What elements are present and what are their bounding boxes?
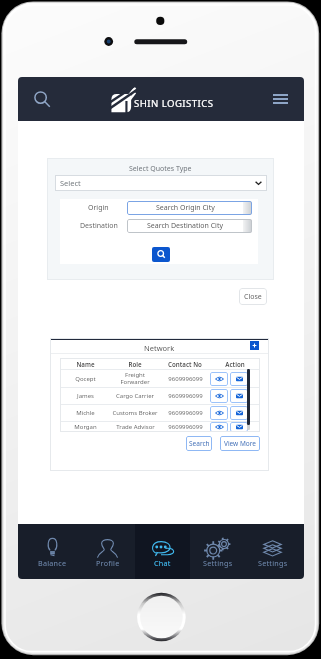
button[interactable]: Select bbox=[55, 175, 267, 191]
staticText: Profile bbox=[96, 558, 120, 568]
button[interactable]: View details bbox=[210, 406, 228, 420]
button[interactable]: Search bbox=[186, 436, 212, 451]
button[interactable]: Balance bbox=[25, 524, 80, 579]
staticText: James bbox=[77, 392, 94, 400]
staticText: 9609996099 bbox=[168, 392, 203, 400]
button[interactable]: Close bbox=[239, 288, 267, 305]
button[interactable]: Send email bbox=[230, 406, 248, 420]
button[interactable]: Send email bbox=[230, 422, 248, 432]
staticText: Cargo Carrier bbox=[116, 392, 154, 400]
button[interactable]: Send email bbox=[230, 389, 248, 403]
button[interactable]: Send email bbox=[230, 372, 248, 386]
staticText: Close bbox=[244, 292, 262, 302]
staticText: Origin bbox=[88, 203, 109, 213]
staticText: Customs Broker bbox=[112, 409, 158, 417]
button[interactable]: Add to network bbox=[250, 341, 259, 350]
staticText: Freight Forwarder bbox=[120, 371, 150, 386]
button[interactable]: View More bbox=[220, 436, 260, 451]
button[interactable]: Settings bbox=[190, 524, 245, 579]
staticText: SHIN LOGISTICS bbox=[134, 97, 214, 110]
staticText: Qocept bbox=[75, 375, 96, 383]
staticText: Search Origin City bbox=[156, 203, 215, 213]
button[interactable]: View details bbox=[210, 389, 228, 403]
button[interactable]: Chat bbox=[135, 524, 190, 579]
button[interactable]: Menu bbox=[262, 77, 298, 121]
staticText: Michle bbox=[76, 409, 95, 417]
staticText: Network bbox=[144, 343, 175, 353]
staticText: Trade Advisor bbox=[116, 423, 155, 431]
staticText: 9609996099 bbox=[168, 423, 203, 431]
button[interactable]: Search bbox=[24, 77, 60, 121]
button[interactable]: Profile bbox=[80, 524, 135, 579]
button[interactable]: View details bbox=[210, 372, 228, 386]
staticText: Select bbox=[60, 178, 81, 188]
staticText: Settings bbox=[203, 558, 233, 568]
staticText: 9609996099 bbox=[168, 375, 203, 383]
staticText: Contact No bbox=[168, 360, 202, 368]
staticText: Select Quotes Type bbox=[129, 164, 192, 174]
staticText: Search bbox=[189, 439, 210, 448]
staticText: Chat bbox=[154, 558, 171, 568]
staticText: Search Destination City bbox=[147, 221, 224, 231]
staticText: 9609996099 bbox=[168, 409, 203, 417]
button[interactable]: View details bbox=[210, 422, 228, 432]
staticText: Morgan bbox=[74, 423, 97, 431]
staticText: Settings bbox=[258, 558, 288, 568]
staticText: Role bbox=[128, 360, 142, 368]
staticText: Balance bbox=[38, 558, 67, 568]
button[interactable]: Settings bbox=[245, 524, 300, 579]
button[interactable]: Search Destination City bbox=[127, 219, 252, 233]
staticText: View More bbox=[224, 439, 256, 448]
button[interactable]: Search Origin City bbox=[127, 201, 252, 215]
staticText: Action bbox=[225, 360, 245, 368]
button[interactable]: Search quotes bbox=[152, 247, 170, 262]
staticText: Name bbox=[76, 360, 95, 368]
staticText: Destination bbox=[80, 221, 118, 231]
